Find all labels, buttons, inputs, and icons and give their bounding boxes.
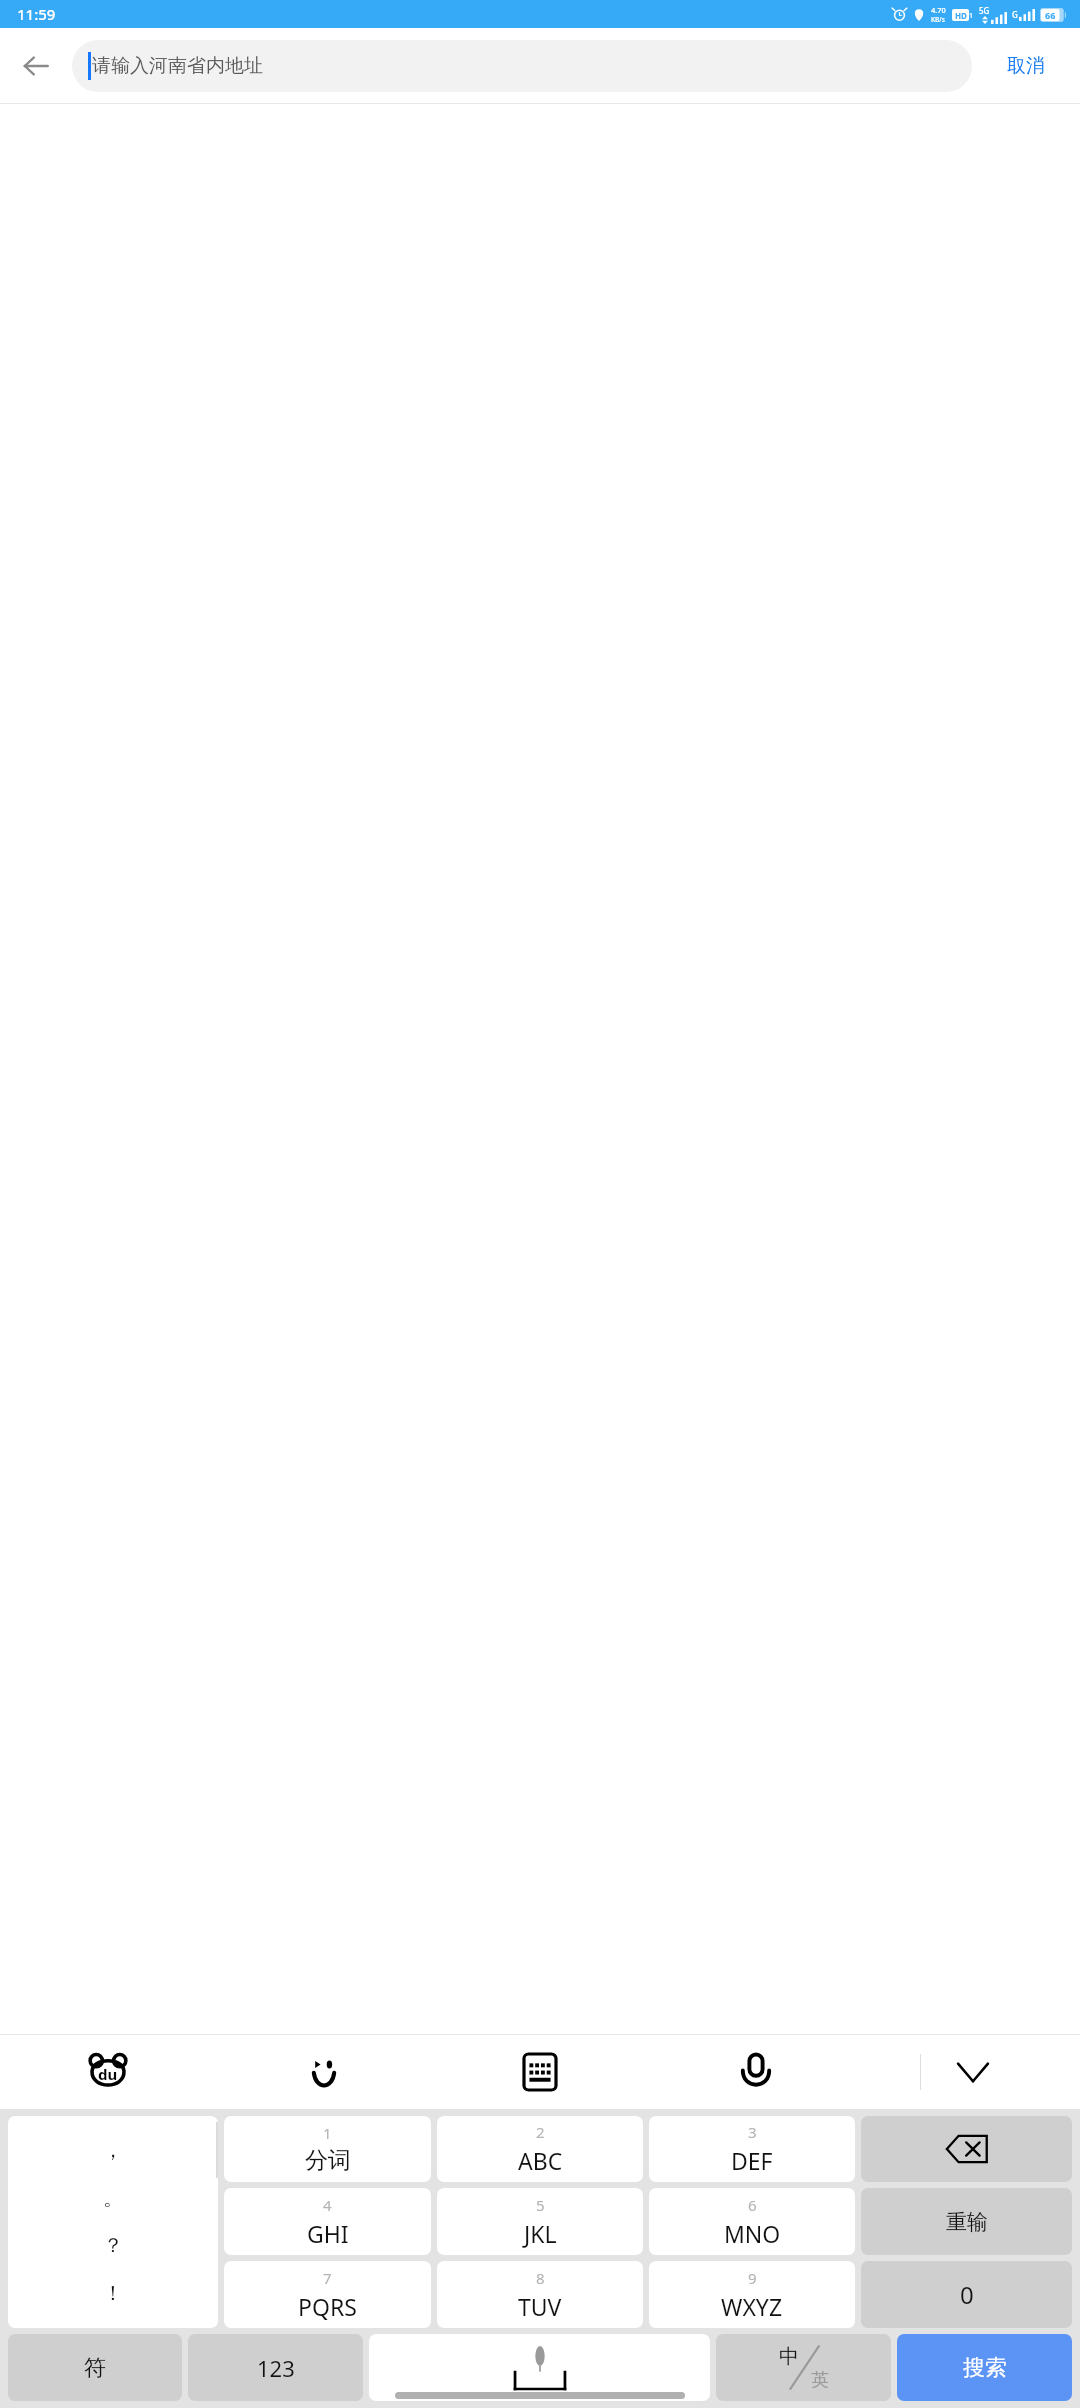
button[interactable]: 1 (224, 2116, 431, 2182)
staticText: DEF (731, 2145, 773, 2176)
button[interactable]: 5 (437, 2188, 643, 2255)
button[interactable]: 123 (188, 2334, 363, 2401)
staticText: ABC (518, 2145, 563, 2176)
staticText: HD (955, 10, 967, 21)
staticText: PQRS (298, 2291, 357, 2322)
button[interactable]: 请输入河南省内地址 (72, 40, 972, 92)
staticText: MNO (724, 2218, 781, 2249)
staticText: 123 (257, 2353, 295, 2383)
staticText: JKL (524, 2218, 557, 2249)
staticText: 5G (979, 5, 990, 16)
staticText: 4.70 (931, 5, 946, 15)
staticText: ？ (103, 2233, 123, 2258)
staticText: 取消 (1007, 54, 1045, 78)
button[interactable]: 符 (8, 2334, 182, 2401)
staticText: WXYZ (721, 2291, 783, 2322)
staticText: KB/s (931, 15, 946, 24)
button[interactable]: Baidu input (0, 2035, 216, 2109)
button[interactable]: Backspace (861, 2116, 1072, 2182)
button[interactable]: 重输 (861, 2188, 1072, 2255)
staticText: 7 (323, 2268, 332, 2288)
button[interactable]: 7 (224, 2261, 431, 2328)
staticText: 1 (323, 2123, 332, 2143)
staticText: 符 (84, 2354, 106, 2382)
staticText: 中 (779, 2344, 799, 2369)
button[interactable]: 0 (861, 2261, 1072, 2328)
staticText: 5 (536, 2195, 545, 2215)
staticText: 请输入河南省内地址 (92, 54, 263, 78)
staticText: du (98, 2064, 118, 2084)
staticText: 1 (969, 11, 974, 21)
button[interactable]: 8 (437, 2261, 643, 2328)
button[interactable]: 3 (649, 2116, 855, 2182)
button[interactable]: 2 (437, 2116, 643, 2182)
staticText: TUV (518, 2291, 562, 2322)
button[interactable]: Space (369, 2334, 710, 2401)
button[interactable]: 搜索 (897, 2334, 1072, 2401)
staticText: 重输 (946, 2209, 988, 2235)
button[interactable]: 4 (224, 2188, 431, 2255)
staticText: 6 (748, 2195, 757, 2215)
button[interactable]: Emoji (216, 2035, 432, 2109)
button[interactable]: 9 (649, 2261, 855, 2328)
staticText: 66 (1045, 9, 1056, 21)
staticText: ， (103, 2138, 123, 2163)
staticText: G (1012, 9, 1018, 20)
staticText: 2 (536, 2122, 545, 2142)
button[interactable]: Chinese English toggle (716, 2334, 891, 2401)
staticText: ！ (103, 2281, 123, 2306)
staticText: 搜索 (963, 2354, 1007, 2382)
button[interactable]: 6 (649, 2188, 855, 2255)
staticText: 0 (960, 2278, 974, 2311)
button[interactable]: 取消 (972, 36, 1080, 96)
staticText: 8 (536, 2268, 545, 2288)
staticText: 4 (323, 2195, 332, 2215)
staticText: 。 (103, 2186, 123, 2211)
button[interactable]: Keyboard layout (432, 2035, 648, 2109)
button[interactable]: Back (0, 30, 72, 102)
staticText: 3 (748, 2122, 757, 2142)
staticText: 11:59 (17, 4, 56, 24)
staticText: 英 (811, 2369, 829, 2392)
button[interactable]: Punctuation (8, 2116, 218, 2328)
staticText: 分词 (305, 2146, 351, 2175)
staticText: GHI (307, 2218, 349, 2249)
button[interactable]: Hide keyboard (921, 2041, 1025, 2103)
staticText: 9 (748, 2268, 757, 2288)
button[interactable]: Voice input (648, 2035, 864, 2109)
